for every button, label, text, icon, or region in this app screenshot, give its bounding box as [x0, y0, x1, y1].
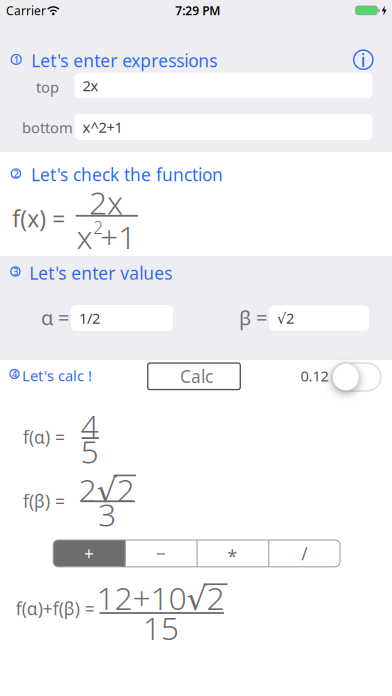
- button[interactable]: Calc: [148, 363, 240, 390]
- button[interactable]: Info: [352, 49, 374, 70]
- staticText: Let's enter expressions: [31, 49, 217, 72]
- staticText: x^2+1: [82, 117, 122, 137]
- staticText: 1/2: [79, 308, 100, 328]
- staticText: Let's enter values: [29, 261, 172, 284]
- staticText: 2x: [89, 181, 123, 223]
- staticText: α =: [41, 304, 69, 331]
- staticText: 2x: [82, 76, 98, 95]
- staticText: top: [36, 77, 59, 97]
- staticText: √2: [277, 308, 294, 328]
- staticText: 7:29 PM: [175, 2, 220, 18]
- button[interactable]: x^2+1: [74, 114, 372, 140]
- staticText: 2√2: [78, 468, 134, 511]
- staticText: +: [84, 542, 94, 565]
- staticText: i: [361, 49, 366, 72]
- staticText: 1: [14, 53, 19, 66]
- staticText: /: [301, 542, 307, 565]
- button[interactable]: √2: [269, 305, 369, 331]
- button[interactable]: 1/2: [71, 305, 173, 331]
- button[interactable]: 2x: [74, 73, 372, 98]
- staticText: 3: [98, 493, 116, 535]
- button[interactable]: Subtract: [125, 540, 197, 567]
- staticText: f(β) =: [23, 489, 65, 512]
- staticText: f(α)+f(β) =: [16, 597, 95, 620]
- staticText: 3: [13, 265, 18, 278]
- staticText: f(α) =: [23, 425, 65, 448]
- staticText: −: [156, 542, 166, 565]
- staticText: 15: [143, 606, 179, 649]
- staticText: Let's check the function: [31, 163, 223, 186]
- staticText: +1: [100, 215, 136, 258]
- button[interactable]: Add: [53, 540, 125, 567]
- staticText: β =: [239, 304, 267, 331]
- staticText: Carrier: [6, 2, 46, 18]
- staticText: 4: [80, 404, 98, 447]
- button[interactable]: Multiply: [197, 537, 268, 570]
- staticText: f(x) =: [12, 203, 65, 233]
- staticText: x: [76, 215, 92, 258]
- staticText: 2: [13, 167, 18, 180]
- button[interactable]: 0.12 decimal toggle: [332, 363, 381, 391]
- staticText: 2: [93, 216, 103, 239]
- staticText: 0.12: [300, 366, 328, 385]
- button[interactable]: Divide: [268, 540, 340, 567]
- staticText: Calc: [180, 365, 213, 388]
- staticText: bottom: [22, 118, 73, 137]
- staticText: Let's calc !: [22, 366, 92, 385]
- staticText: 5: [80, 430, 98, 472]
- staticText: 12+10√2: [96, 576, 224, 619]
- staticText: *: [227, 545, 237, 568]
- staticText: 4: [12, 368, 17, 380]
